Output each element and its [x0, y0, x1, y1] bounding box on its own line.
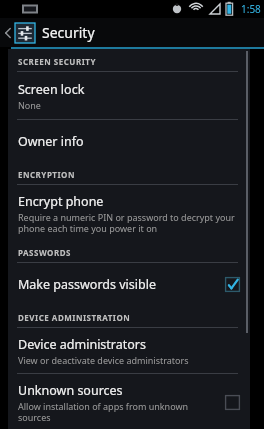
staticText: Require a numeric PIN or password to dec… [18, 211, 240, 234]
staticText: Device administrators [18, 336, 147, 353]
button[interactable]: Screen lock [8, 72, 250, 119]
staticText: Allow installation of apps from unknown … [18, 400, 219, 422]
staticText: Unknown sources [18, 382, 123, 399]
staticText: DEVICE ADMINISTRATION [18, 312, 131, 323]
staticText: Make passwords visible [18, 276, 156, 293]
button[interactable]: Device administrators [8, 328, 250, 373]
staticText: Owner info [18, 133, 84, 150]
staticText: Security [42, 23, 95, 42]
button[interactable]: Navigate up [0, 18, 264, 47]
staticText: 1:58 [241, 2, 261, 16]
staticText: ENCRYPTION [18, 169, 75, 180]
staticText: View or deactivate device administrators [18, 354, 189, 366]
button[interactable]: Encrypt phone [8, 185, 250, 240]
staticText: Screen lock [18, 81, 85, 98]
button[interactable]: Make passwords visible [8, 263, 250, 305]
staticText: SCREEN SECURITY [18, 56, 96, 67]
button[interactable]: Owner info [8, 120, 250, 162]
button[interactable]: Unknown sources [8, 374, 250, 429]
staticText: Encrypt phone [18, 193, 104, 210]
staticText: PASSWORDS [18, 247, 71, 258]
staticText: None [18, 99, 41, 111]
